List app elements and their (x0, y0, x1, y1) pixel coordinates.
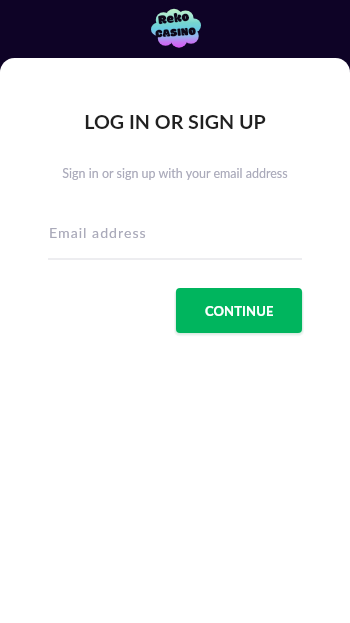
staticText: Sign in or sign up with your email addre… (0, 166, 350, 181)
button[interactable]: Email address (48, 224, 302, 260)
staticText: LOG IN OR SIGN UP (0, 110, 350, 134)
other: Reko Casino logo (151, 10, 201, 47)
staticText: Email address (49, 224, 147, 241)
staticText: CONTINUE (205, 303, 274, 319)
button[interactable]: CONTINUE (176, 288, 302, 333)
